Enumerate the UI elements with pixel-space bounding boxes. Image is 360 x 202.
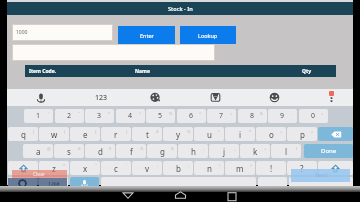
button[interactable]: x xyxy=(70,161,100,175)
button[interactable]: u xyxy=(194,127,224,141)
button[interactable]: Voice typing xyxy=(70,177,99,189)
staticText: Qty xyxy=(302,68,311,75)
staticText: g xyxy=(160,146,165,157)
staticText: _ xyxy=(234,146,236,151)
button[interactable]: 6 xyxy=(177,109,206,123)
button[interactable]: 123 xyxy=(87,90,115,105)
button[interactable]: s xyxy=(54,144,84,158)
staticText: 2 xyxy=(67,111,72,121)
staticText: ( xyxy=(296,146,298,151)
staticText: b xyxy=(176,163,181,174)
staticText: Item Code. xyxy=(29,68,57,75)
button[interactable]: k xyxy=(240,144,270,158)
button[interactable]: g xyxy=(147,144,177,158)
button[interactable]: Settings xyxy=(8,177,37,189)
button[interactable]: 4 xyxy=(116,109,145,123)
button[interactable]: t xyxy=(132,127,162,141)
button[interactable]: Lookup xyxy=(180,26,236,44)
button[interactable]: c xyxy=(101,161,131,175)
staticText: " xyxy=(78,111,80,116)
button[interactable]: 1 xyxy=(24,109,53,123)
button[interactable]: a xyxy=(23,144,53,158)
button[interactable]: Stock - In xyxy=(7,2,353,15)
button[interactable]: More options xyxy=(321,90,341,105)
staticText: 1 xyxy=(36,111,41,121)
button[interactable]: o xyxy=(256,127,286,141)
button[interactable]: Enter xyxy=(289,177,353,189)
staticText: / xyxy=(139,111,141,116)
staticText: e xyxy=(83,129,88,140)
staticText: [ xyxy=(33,129,35,134)
staticText: + xyxy=(321,111,324,116)
button[interactable]: d xyxy=(85,144,115,158)
button[interactable]: y xyxy=(163,127,193,141)
staticText: j xyxy=(223,146,226,157)
button[interactable]: 3 xyxy=(85,109,114,123)
staticText: d xyxy=(98,146,103,157)
button[interactable]: ! xyxy=(256,161,286,175)
button[interactable]: e xyxy=(70,127,100,141)
button[interactable]: f xyxy=(116,144,146,158)
button[interactable]: . xyxy=(258,177,287,189)
staticText: - xyxy=(203,146,205,151)
button[interactable]: v xyxy=(132,161,162,175)
button[interactable]: Backspace xyxy=(318,127,353,141)
staticText: q xyxy=(21,129,26,140)
button[interactable]: Shift xyxy=(318,161,353,175)
staticText: Name xyxy=(135,68,150,75)
button[interactable]: Done xyxy=(304,144,353,158)
staticText: 1000 xyxy=(16,29,28,36)
button[interactable]: r xyxy=(101,127,131,141)
staticText: } xyxy=(126,129,128,134)
staticText: Lookup xyxy=(198,32,218,39)
staticText: ^ xyxy=(199,111,202,116)
button[interactable]: p xyxy=(287,127,317,141)
button[interactable]: 2 xyxy=(55,109,84,123)
staticText: 123 xyxy=(95,93,108,103)
staticText: ! xyxy=(219,163,221,168)
staticText: * xyxy=(63,163,66,168)
button[interactable]: i xyxy=(225,127,255,141)
staticText: - xyxy=(292,111,294,116)
button[interactable]: 1000 xyxy=(13,25,112,40)
button[interactable]: Space xyxy=(101,177,256,189)
button[interactable]: n xyxy=(194,161,224,175)
button[interactable]: 9 xyxy=(268,109,297,123)
staticText: i xyxy=(239,129,242,140)
button[interactable]: Item Code. xyxy=(25,65,336,77)
staticText: s xyxy=(67,146,71,157)
button[interactable]: l xyxy=(271,144,301,158)
staticText: 7 xyxy=(219,111,224,121)
staticText: % xyxy=(140,146,144,151)
button[interactable]: Emoji xyxy=(262,90,286,105)
button[interactable]: b xyxy=(163,161,193,175)
button[interactable]: Stickers xyxy=(143,90,167,105)
button[interactable]: 7 xyxy=(207,109,236,123)
button[interactable]: 1@# xyxy=(39,177,68,189)
button[interactable]: 0 xyxy=(299,109,328,123)
button[interactable]: w xyxy=(39,127,69,141)
staticText: . xyxy=(271,178,274,189)
button[interactable]: h xyxy=(178,144,208,158)
button[interactable]: m xyxy=(225,161,255,175)
button[interactable]: 5 xyxy=(146,109,175,123)
staticText: o xyxy=(269,129,274,140)
staticText: c xyxy=(114,163,118,174)
staticText: v xyxy=(145,163,150,174)
staticText: l xyxy=(285,146,288,157)
button[interactable]: Voice input xyxy=(29,90,53,105)
button[interactable]: q xyxy=(8,127,38,141)
staticText: ' xyxy=(48,111,49,116)
button[interactable]: ? xyxy=(287,161,317,175)
button[interactable]: Clipboard xyxy=(203,90,227,105)
staticText: " xyxy=(95,163,97,168)
button[interactable]: 8 xyxy=(238,109,267,123)
staticText: * xyxy=(108,111,111,116)
button[interactable]: Enter xyxy=(118,26,175,44)
button[interactable]: j xyxy=(209,144,239,158)
button[interactable]: Shift xyxy=(8,161,38,175)
staticText: Done xyxy=(321,147,337,155)
button[interactable]: z xyxy=(39,161,69,175)
staticText: n xyxy=(207,163,212,174)
